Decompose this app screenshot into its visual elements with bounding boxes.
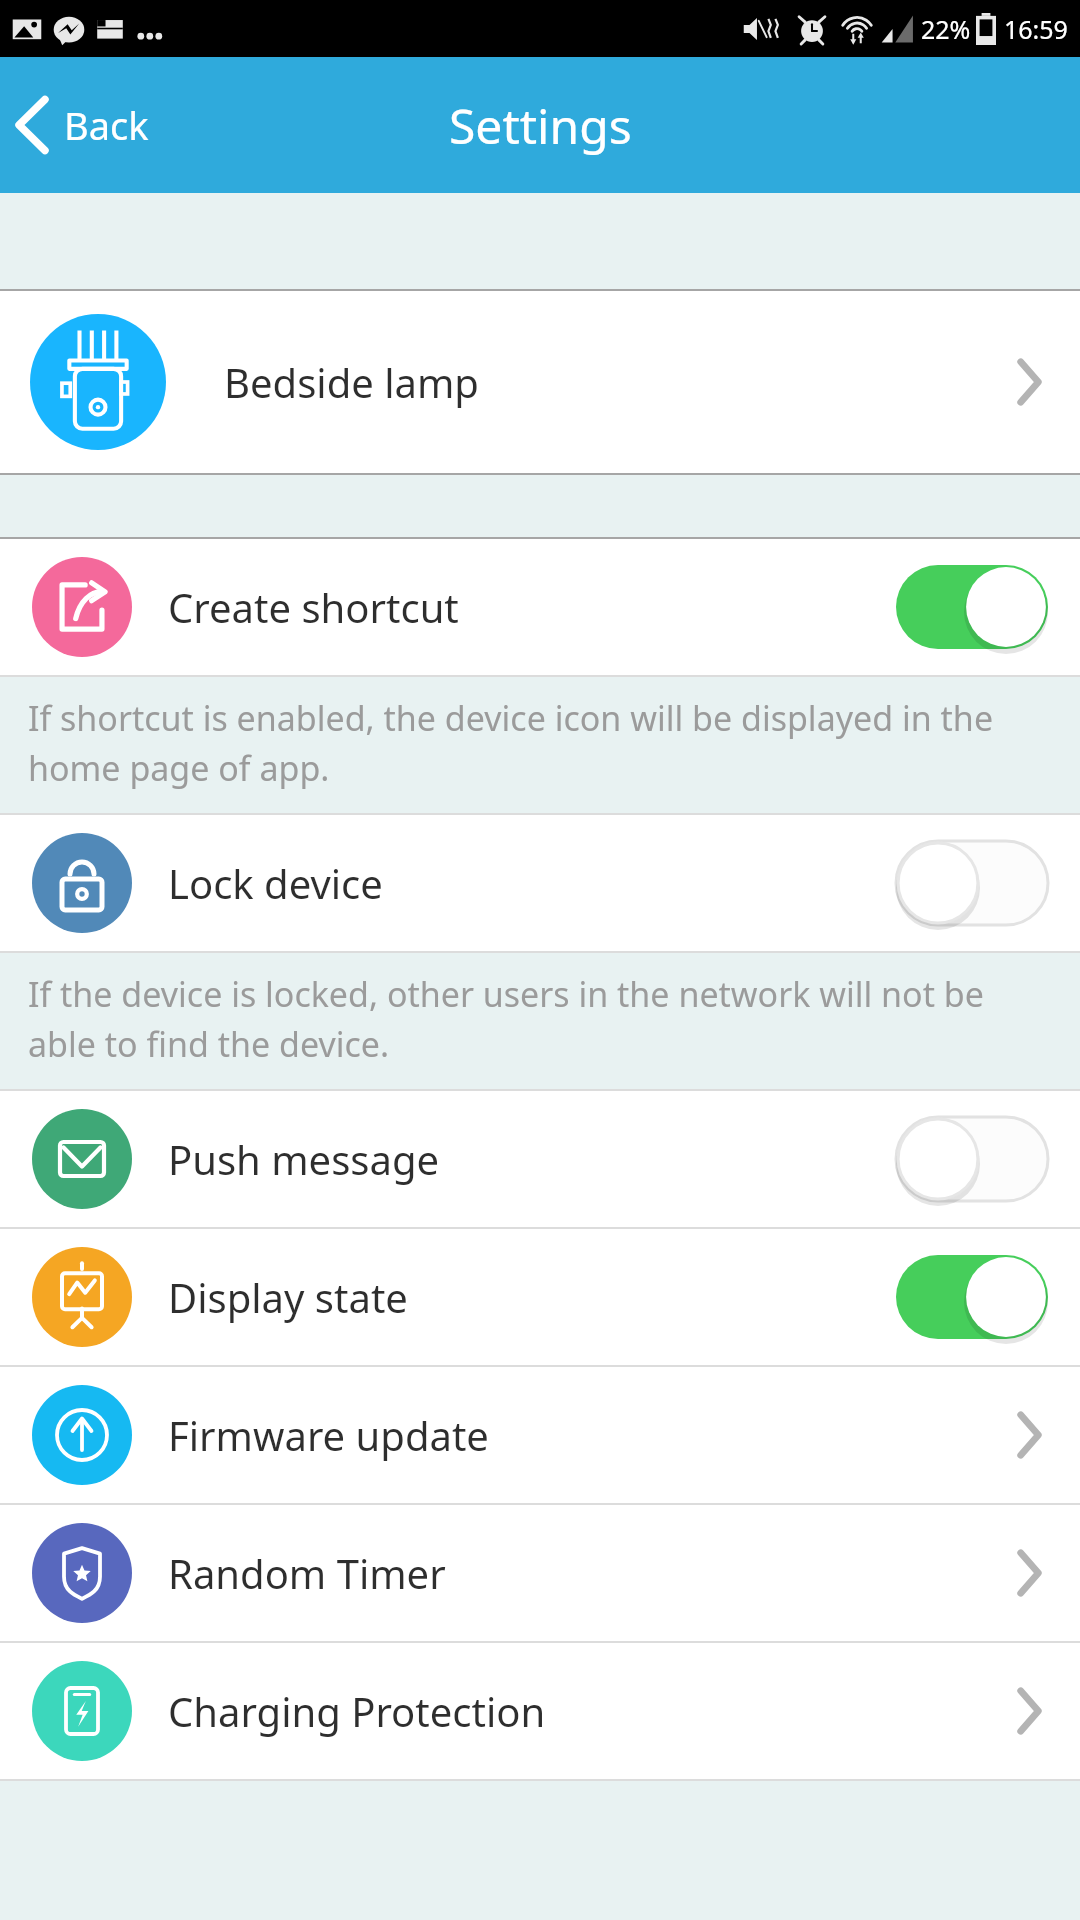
button[interactable]: Firmware update	[1012, 1407, 1046, 1463]
button[interactable]: Push message	[896, 1117, 1048, 1201]
staticText: Back	[64, 99, 149, 151]
staticText: Lock device	[168, 856, 383, 910]
button[interactable]: Display state	[0, 1229, 1080, 1365]
button[interactable]: Charging Protection	[0, 1643, 1080, 1779]
button[interactable]: Random Timer	[1012, 1545, 1046, 1601]
staticText: 16:59	[1004, 12, 1068, 46]
staticText: Firmware update	[168, 1408, 489, 1462]
button[interactable]: Display state	[896, 1255, 1048, 1339]
button[interactable]: Bedside lamp	[0, 291, 1080, 473]
staticText: If shortcut is enabled, the device icon …	[28, 695, 1044, 791]
staticText: Create shortcut	[168, 580, 459, 634]
staticText: If the device is locked, other users in …	[28, 971, 1044, 1067]
staticText: 22%	[921, 12, 971, 46]
button[interactable]: Firmware update	[0, 1367, 1080, 1503]
button[interactable]: Back	[0, 57, 171, 193]
staticText: Random Timer	[168, 1546, 446, 1600]
staticText: Settings	[449, 93, 632, 158]
button[interactable]: Lock device	[896, 841, 1048, 925]
staticText: Bedside lamp	[224, 355, 479, 409]
staticText: Charging Protection	[168, 1684, 546, 1738]
button[interactable]: Lock device	[0, 815, 1080, 951]
button[interactable]: Push message	[0, 1091, 1080, 1227]
button[interactable]: Bedside lamp	[1012, 354, 1046, 410]
button[interactable]: Charging Protection	[1012, 1683, 1046, 1739]
staticText: Push message	[168, 1132, 440, 1186]
button[interactable]: Create shortcut	[896, 565, 1048, 649]
staticText: Display state	[168, 1270, 408, 1324]
button[interactable]: Create shortcut	[0, 539, 1080, 675]
button[interactable]: Random Timer	[0, 1505, 1080, 1641]
